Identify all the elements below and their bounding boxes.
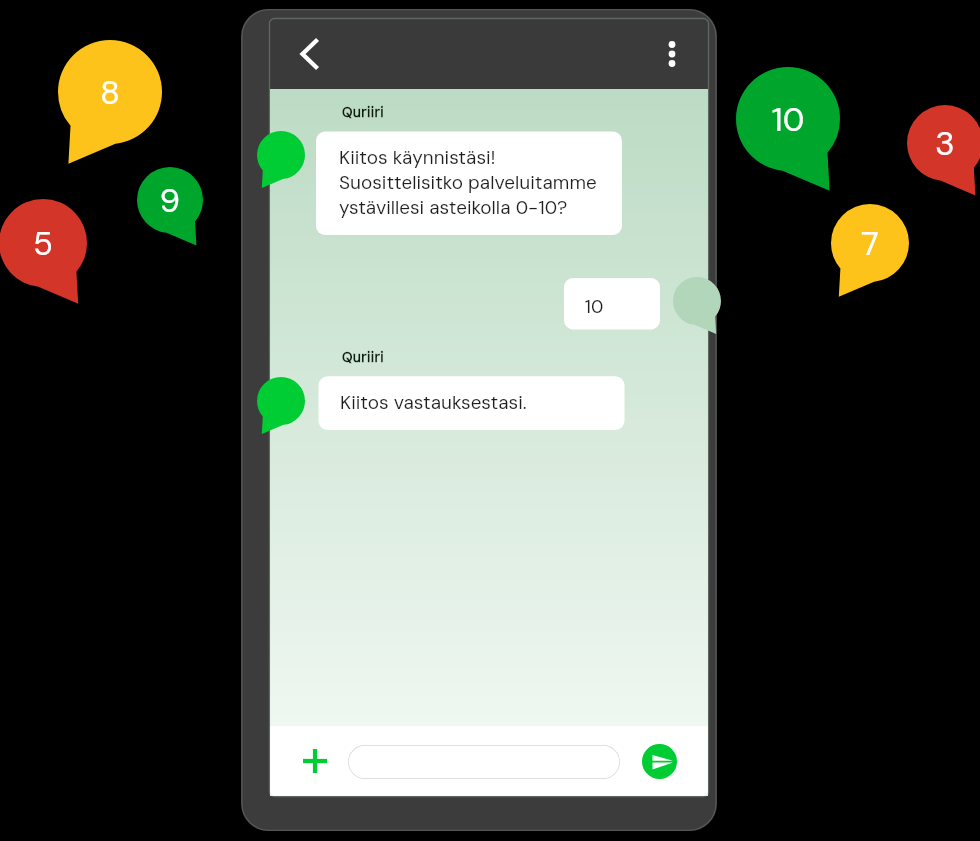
button[interactable]: Back [288,32,328,76]
button[interactable]: Add attachment [295,741,335,781]
button[interactable]: Message [348,745,620,779]
button[interactable]: Send [642,744,677,779]
button[interactable]: More options [654,32,690,76]
